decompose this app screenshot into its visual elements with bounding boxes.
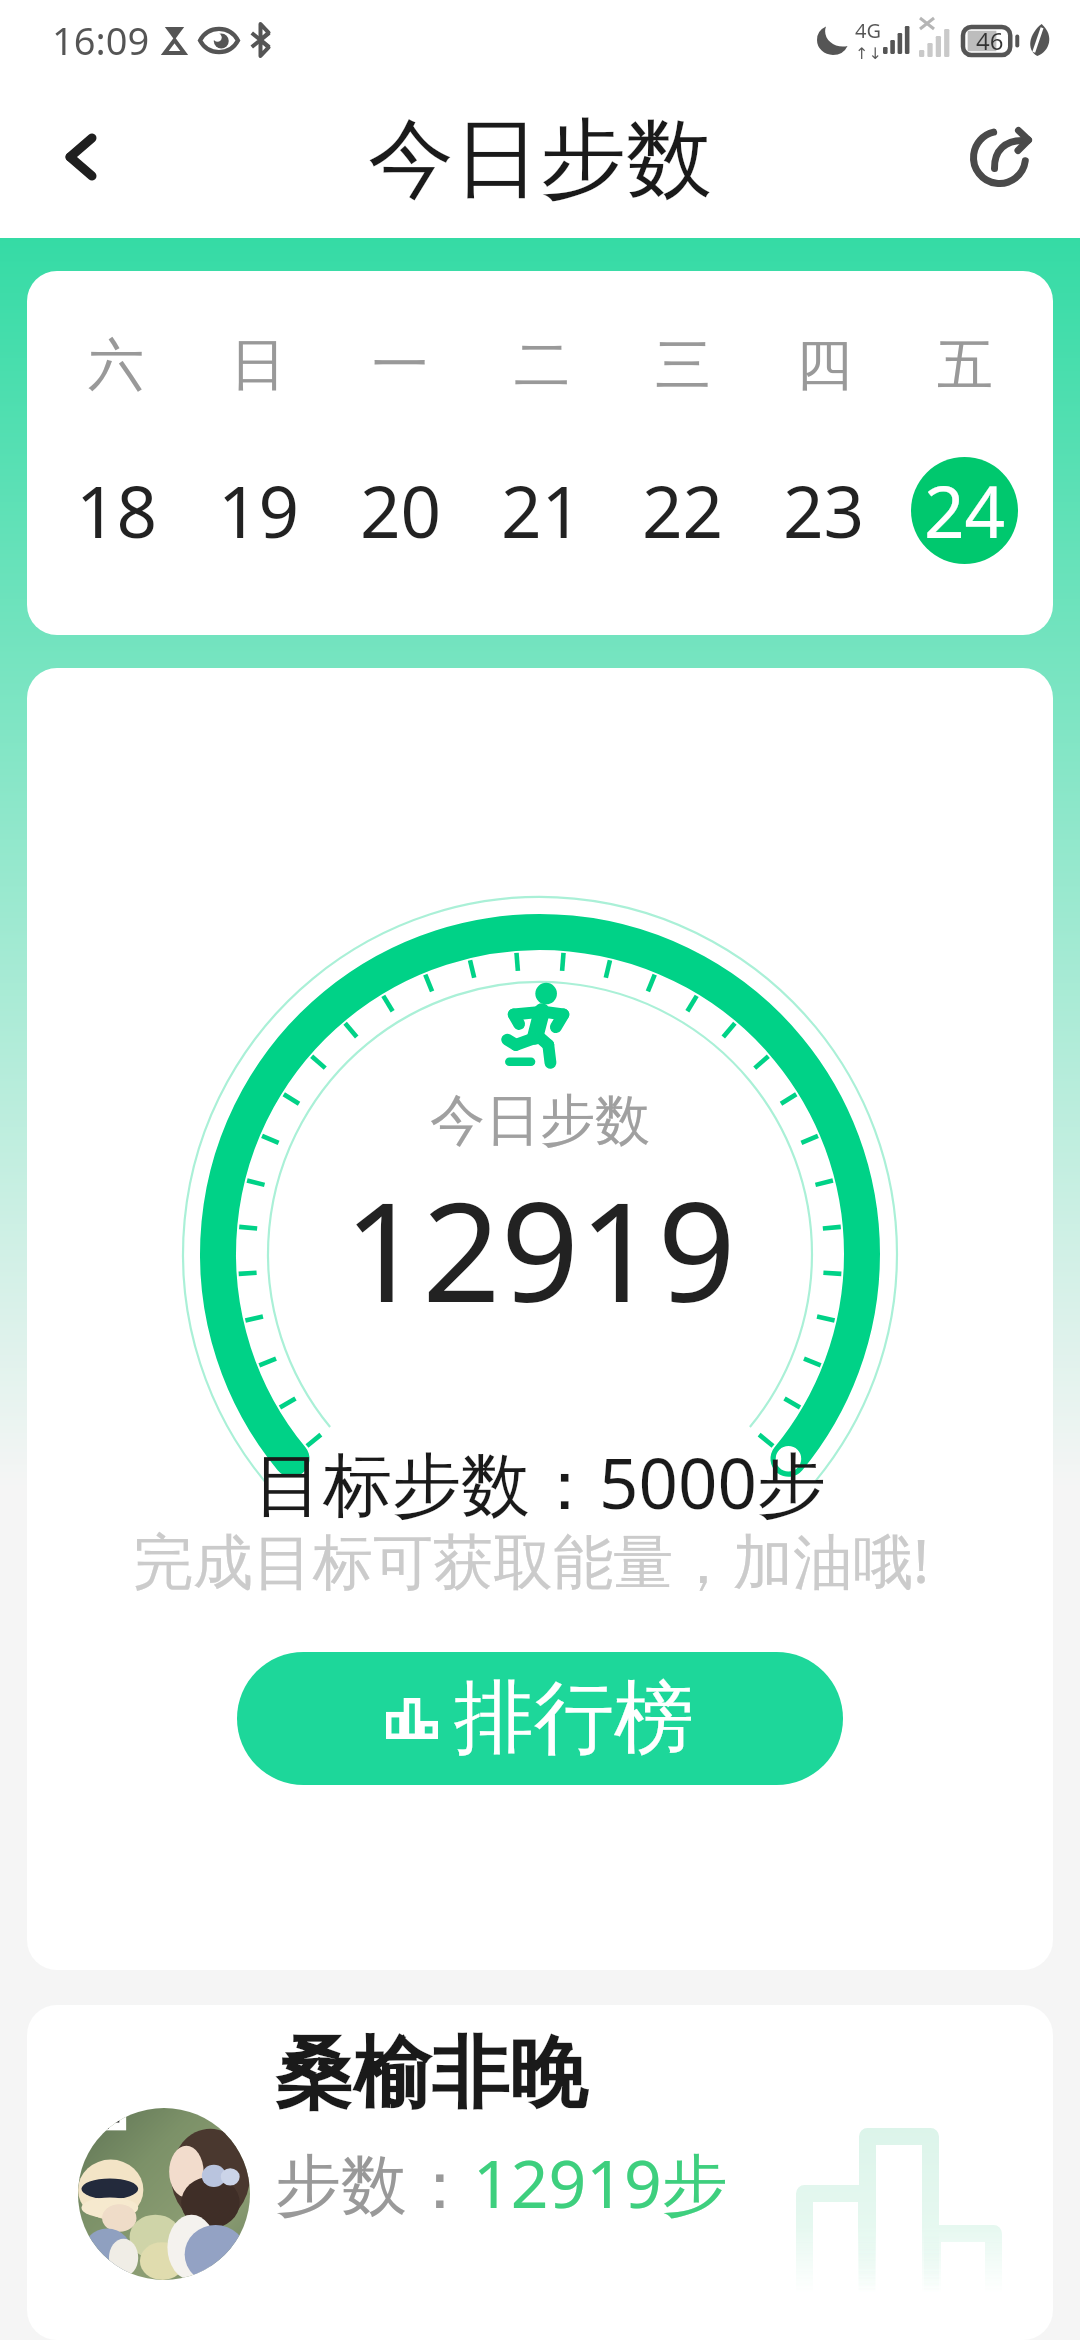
button[interactable]: 20 bbox=[347, 457, 454, 564]
staticText: 23 bbox=[783, 462, 865, 559]
staticText: 二 bbox=[514, 330, 570, 401]
staticText: 22 bbox=[642, 462, 724, 559]
button[interactable]: 22 bbox=[629, 457, 736, 564]
staticText: 21 bbox=[501, 462, 583, 559]
staticText: 今日步数 bbox=[430, 1086, 650, 1155]
button[interactable]: 桑榆非晚 bbox=[27, 2005, 1053, 2340]
button[interactable]: 23 bbox=[770, 457, 877, 564]
staticText: 24 bbox=[924, 462, 1006, 559]
button[interactable]: 19 bbox=[205, 457, 312, 564]
staticText: 三 bbox=[655, 330, 711, 401]
button[interactable]: 排行榜 bbox=[237, 1652, 843, 1785]
staticText: 六 bbox=[88, 330, 144, 401]
staticText: 目标步数：5000步 bbox=[254, 1435, 826, 1529]
button[interactable]: Back bbox=[0, 94, 130, 224]
staticText: 五 bbox=[937, 330, 993, 401]
staticText: 20 bbox=[360, 462, 442, 559]
staticText: 19 bbox=[218, 462, 300, 559]
staticText: 四 bbox=[796, 330, 852, 401]
staticText: ↑↓ bbox=[855, 44, 882, 63]
button[interactable]: 24 bbox=[911, 457, 1018, 564]
button[interactable]: Refresh bbox=[950, 94, 1080, 224]
staticText: 完成目标可获取能量，加油哦! bbox=[133, 1519, 930, 1601]
staticText: 18 bbox=[76, 462, 158, 559]
button[interactable]: 21 bbox=[488, 457, 595, 564]
staticText: 一 bbox=[372, 330, 428, 401]
staticText: 步数：12919步 bbox=[275, 2137, 728, 2227]
staticText: 4G bbox=[855, 17, 881, 44]
staticText: 桑榆非晚 bbox=[275, 2025, 587, 2123]
staticText: 排行榜 bbox=[454, 1668, 694, 1769]
staticText: 16:09 bbox=[52, 14, 150, 66]
staticText: 今日步数 bbox=[368, 105, 712, 213]
staticText: 日 bbox=[230, 330, 286, 401]
button[interactable]: 18 bbox=[63, 457, 170, 564]
staticText: 46 bbox=[976, 24, 1004, 57]
staticText: 12919 bbox=[344, 1156, 736, 1343]
